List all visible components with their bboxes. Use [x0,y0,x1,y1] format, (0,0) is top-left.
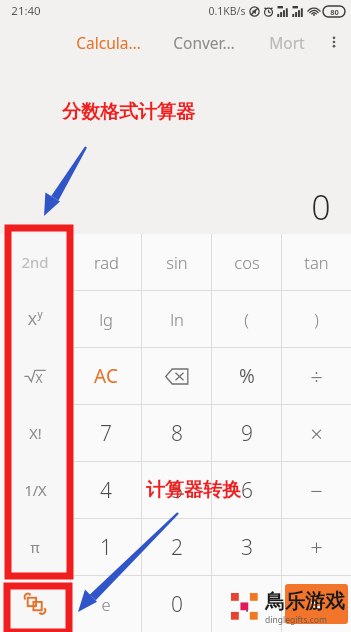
button[interactable]: More options [321,22,347,62]
button[interactable]: = [285,584,348,624]
staticText: Calcula… [76,32,141,53]
button[interactable]: Equals [282,576,351,632]
staticText: % [239,363,255,389]
staticText: − [310,475,323,505]
staticText: 鳥乐游戏 [265,589,345,614]
staticText: dinglegifts.com [265,614,327,626]
button[interactable]: 2nd [0,234,70,290]
staticText: ) [314,308,319,330]
button[interactable]: Mort [252,22,321,62]
staticText: 1 [100,533,112,562]
button[interactable]: 2 [142,519,211,575]
staticText: π [30,537,40,557]
button[interactable]: 9 [212,405,281,461]
staticText: . [244,590,250,619]
staticText: cos [234,251,260,273]
button[interactable]: % [212,348,281,404]
button[interactable]: Delete [142,348,211,404]
button[interactable]: ( [212,291,281,347]
staticText: ( [244,308,249,330]
button[interactable]: sin [142,234,211,290]
button[interactable]: 5 [142,462,211,518]
button[interactable]: 7 [71,405,141,461]
button[interactable]: tan [282,234,351,290]
staticText: ln [170,308,184,330]
staticText: ÷ [310,361,323,391]
button[interactable]: − [282,462,351,518]
button[interactable]: π [0,518,70,575]
button[interactable]: 0 [142,576,211,632]
button[interactable]: rad [71,234,141,290]
staticText: 21:40 [11,3,41,19]
button[interactable]: X [0,290,70,347]
button[interactable]: 4 [71,462,141,518]
button[interactable]: ÷ [282,348,351,404]
staticText: Mort [269,32,305,53]
button[interactable]: Fraction format [0,575,70,632]
staticText: X! [29,423,42,443]
button[interactable]: 1 [71,519,141,575]
staticText: Conver… [173,32,235,53]
button[interactable]: 3 [212,519,281,575]
staticText: 3 [241,533,253,562]
staticText: 2nd [21,252,49,272]
staticText: 0.1KB/s [208,4,246,18]
staticText: 0 [171,590,183,619]
button[interactable]: lg [71,291,141,347]
button[interactable]: cos [212,234,281,290]
staticText: + [310,532,323,562]
staticText: 9 [241,419,253,448]
staticText: 80 [330,7,339,17]
staticText: lg [99,308,113,330]
button[interactable]: X [0,347,70,404]
button[interactable]: 1/X [0,461,70,518]
staticText: 1/X [24,480,47,500]
button[interactable]: 8 [142,405,211,461]
button[interactable]: . [212,576,281,632]
staticText: tan [304,251,329,273]
staticText: 4 [100,476,112,505]
staticText: rad [94,251,119,273]
button[interactable]: ) [282,291,351,347]
staticText: = [310,589,323,619]
staticText: 8 [171,419,183,448]
staticText: 计算器转换 [146,478,241,502]
button[interactable]: + [282,519,351,575]
button[interactable]: × [282,405,351,461]
button[interactable]: Conver… [156,22,252,62]
staticText: AC [94,363,118,389]
staticText: 2 [171,533,183,562]
staticText: 7 [100,419,112,448]
staticText: sin [166,251,188,273]
staticText: e [101,593,111,615]
button[interactable]: 6 [212,462,281,518]
staticText: × [310,418,323,448]
staticText: 5 [171,476,183,505]
button[interactable]: Calcula… [60,22,156,62]
staticText: 6 [241,476,253,505]
staticText: X [28,309,37,329]
button[interactable]: e [71,576,141,632]
button[interactable]: ln [142,291,211,347]
staticText: 0 [311,184,331,230]
staticText: y [37,307,43,321]
button[interactable]: AC [71,348,141,404]
staticText: X [35,370,43,386]
staticText: 分数格式计算器 [62,100,195,124]
button[interactable]: X! [0,404,70,461]
